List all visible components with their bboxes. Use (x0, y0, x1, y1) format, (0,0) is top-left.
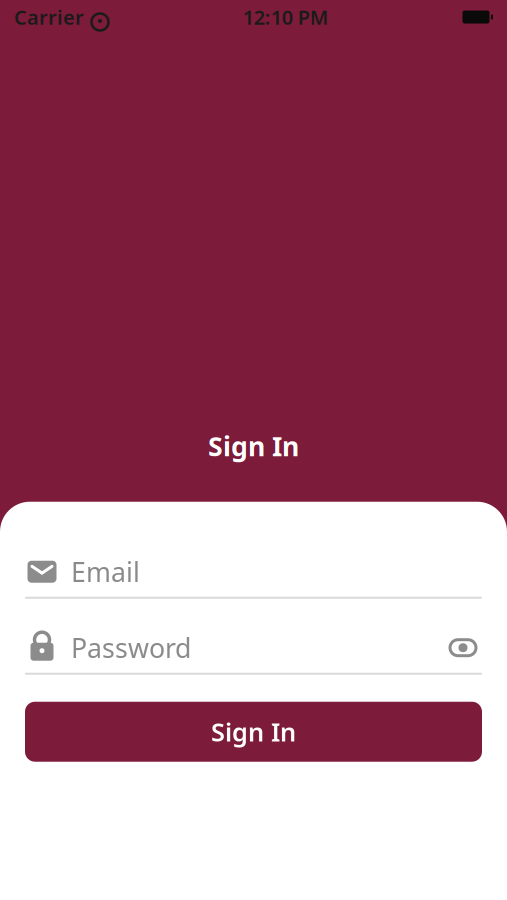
staticText: Carrier (14, 4, 84, 30)
staticText: 12:10 PM (243, 4, 329, 30)
staticText: Sign In (208, 428, 299, 464)
button[interactable]: Sign In (25, 702, 482, 762)
button[interactable]: Show password (444, 629, 482, 667)
staticText: Sign In (211, 715, 296, 748)
staticText: Password (71, 630, 191, 665)
staticText: Email (71, 554, 140, 589)
